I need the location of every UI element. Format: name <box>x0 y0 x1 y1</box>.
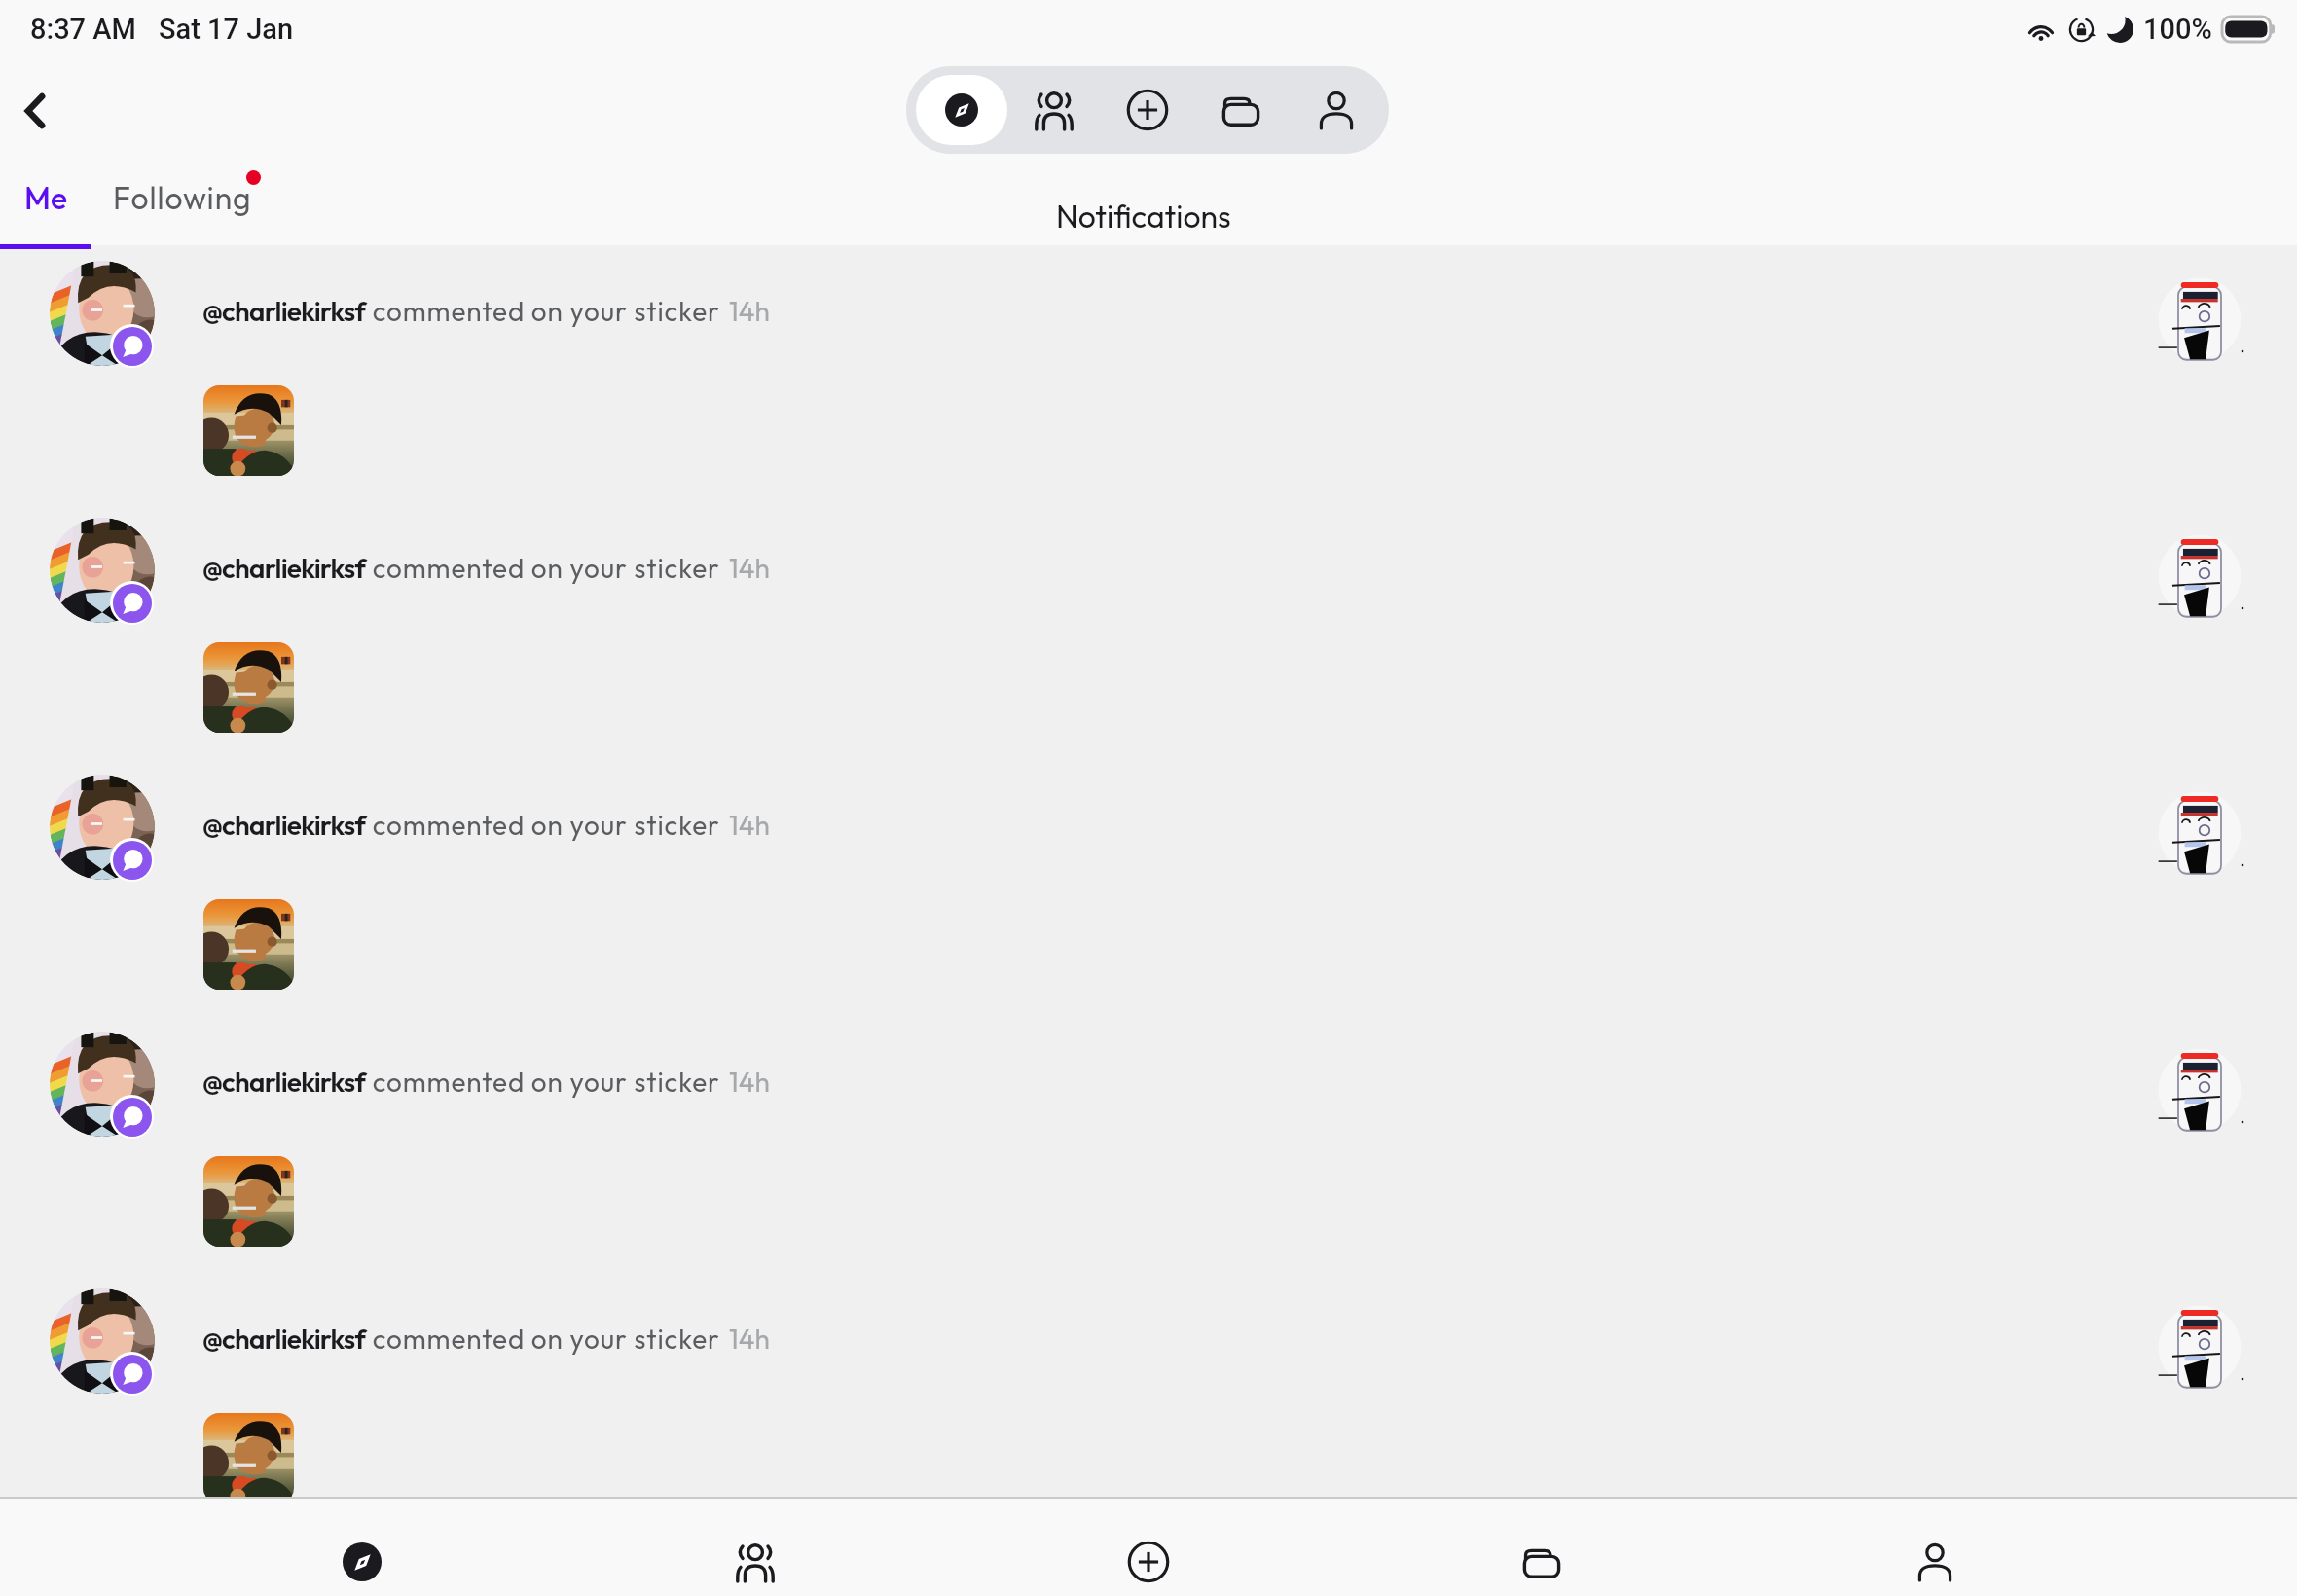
staticText: Me <box>24 178 68 217</box>
button[interactable]: Open sticker <box>2146 518 2253 625</box>
staticText: commented on your sticker <box>366 294 720 328</box>
button[interactable]: Open @charliekirksf profile <box>50 775 155 880</box>
button[interactable]: Open sticker <box>2146 261 2253 368</box>
button[interactable]: Open @charliekirksf profile <box>0 1032 2297 1288</box>
staticText: 14h <box>729 1065 770 1099</box>
button[interactable]: Collections <box>1194 66 1288 154</box>
button[interactable]: Open comment photo <box>203 385 294 476</box>
button[interactable]: Open comment photo <box>203 1156 294 1247</box>
button[interactable]: Open @charliekirksf profile <box>0 1288 2297 1497</box>
button[interactable]: Open @charliekirksf profile <box>50 261 155 366</box>
button[interactable]: Explore <box>165 1528 559 1596</box>
staticText: Notifications <box>1056 197 1231 236</box>
button[interactable]: Open comment photo <box>203 899 294 990</box>
button[interactable]: Me <box>0 175 91 245</box>
button[interactable]: Create <box>1101 66 1194 154</box>
staticText: 14h <box>729 294 770 328</box>
staticText: Sat 17 Jan <box>159 13 294 46</box>
staticText: @charliekirksf <box>202 808 366 842</box>
staticText: @charliekirksf <box>202 294 366 328</box>
button[interactable]: Open @charliekirksf profile <box>50 1032 155 1137</box>
staticText: commented on your sticker <box>366 1065 720 1099</box>
staticText: commented on your sticker <box>366 1322 720 1356</box>
button[interactable]: Friends <box>1007 66 1101 154</box>
staticText: 8:37 AM <box>30 13 136 46</box>
button[interactable]: Open @charliekirksf profile <box>50 518 155 623</box>
staticText: @charliekirksf <box>202 1322 366 1356</box>
staticText: 100% <box>2143 13 2212 46</box>
button[interactable]: Open sticker <box>2146 1032 2253 1139</box>
button[interactable]: Friends <box>559 1528 952 1596</box>
button[interactable]: Following <box>91 175 273 245</box>
button[interactable]: Create <box>952 1528 1345 1596</box>
button[interactable]: Profile <box>1290 66 1383 154</box>
button[interactable]: Collections <box>1345 1528 1738 1596</box>
button[interactable]: Open @charliekirksf profile <box>0 261 2297 518</box>
staticText: 14h <box>729 551 770 585</box>
button[interactable]: Open comment photo <box>203 642 294 733</box>
button[interactable]: Open @charliekirksf profile <box>0 775 2297 1032</box>
button[interactable]: Open @charliekirksf profile <box>50 1288 155 1394</box>
staticText: 14h <box>729 1322 770 1356</box>
staticText: @charliekirksf <box>202 1065 366 1099</box>
button[interactable]: Open sticker <box>2146 775 2253 882</box>
staticText: commented on your sticker <box>366 551 720 585</box>
button[interactable]: Open sticker <box>2146 1288 2253 1396</box>
staticText: commented on your sticker <box>366 808 720 842</box>
button[interactable]: Back <box>0 76 69 145</box>
staticText: @charliekirksf <box>202 551 366 585</box>
button[interactable]: Open comment photo <box>203 1413 294 1497</box>
staticText: Following <box>113 178 252 217</box>
button[interactable]: Explore <box>916 75 1007 145</box>
staticText: 14h <box>729 808 770 842</box>
button[interactable]: Open @charliekirksf profile <box>0 518 2297 775</box>
button[interactable]: Profile <box>1738 1528 2132 1596</box>
